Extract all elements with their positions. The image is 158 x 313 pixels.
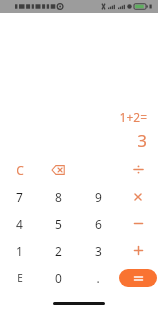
button[interactable]: 5: [39, 210, 78, 237]
staticText: 2: [55, 243, 62, 259]
staticText: 9: [95, 189, 102, 205]
staticText: 6: [95, 216, 102, 232]
button[interactable]: 6: [78, 210, 118, 237]
button[interactable]: 9: [78, 183, 118, 210]
staticText: .: [96, 270, 100, 286]
button[interactable]: 4: [0, 210, 39, 237]
staticText: E: [17, 271, 23, 285]
button[interactable]: C: [0, 156, 39, 183]
button[interactable]: Minus: [118, 210, 158, 237]
button[interactable]: Divide: [118, 156, 158, 183]
staticText: 5: [55, 216, 62, 232]
button[interactable]: Equals: [119, 269, 157, 287]
button[interactable]: 1: [0, 237, 39, 264]
staticText: C: [16, 162, 24, 178]
staticText: 3: [95, 243, 102, 259]
button[interactable]: 2: [39, 237, 78, 264]
button[interactable]: 7: [0, 183, 39, 210]
staticText: 1: [16, 243, 23, 259]
button[interactable]: E: [0, 264, 39, 291]
staticText: 1+2=: [119, 109, 147, 125]
staticText: 0: [55, 270, 62, 286]
staticText: 3: [137, 129, 147, 152]
button[interactable]: 0: [39, 264, 78, 291]
button[interactable]: 3: [78, 237, 118, 264]
button[interactable]: Backspace: [39, 156, 78, 183]
button[interactable]: .: [78, 264, 118, 291]
staticText: 7: [16, 189, 23, 205]
staticText: 4: [16, 216, 23, 232]
button[interactable]: Plus: [118, 237, 158, 264]
staticText: 8: [55, 189, 62, 205]
button[interactable]: 8: [39, 183, 78, 210]
button[interactable]: Multiply: [118, 183, 158, 210]
